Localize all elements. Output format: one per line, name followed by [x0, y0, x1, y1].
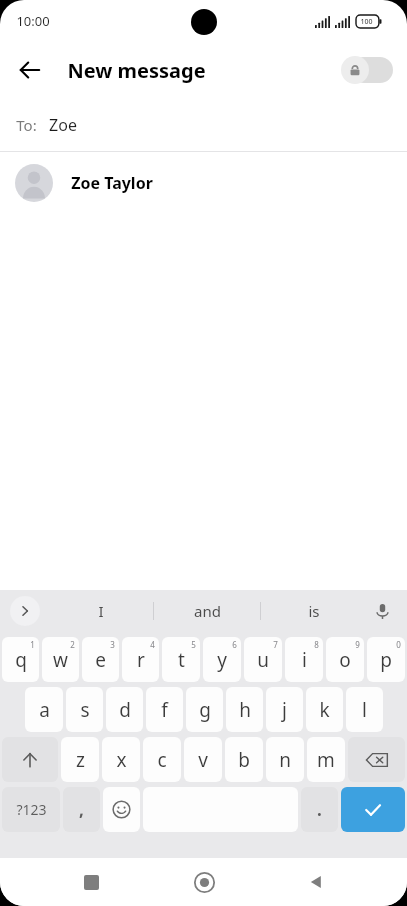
button[interactable]: b: [225, 737, 263, 782]
button[interactable]: Emoji: [103, 787, 140, 832]
staticText: s: [80, 697, 90, 723]
button[interactable]: w: [42, 637, 79, 682]
staticText: e: [95, 647, 106, 673]
staticText: ?123: [16, 800, 47, 819]
staticText: 100: [360, 17, 373, 27]
staticText: is: [308, 601, 320, 621]
staticText: 6: [232, 639, 237, 650]
staticText: c: [157, 747, 167, 773]
button[interactable]: Expand toolbar: [10, 596, 40, 626]
button[interactable]: To:: [0, 98, 407, 151]
button[interactable]: I: [48, 590, 153, 632]
button[interactable]: Recents: [69, 860, 113, 904]
button[interactable]: n: [266, 737, 304, 782]
button[interactable]: e: [82, 637, 119, 682]
staticText: w: [53, 647, 68, 673]
staticText: 8: [314, 639, 319, 650]
button[interactable]: l: [346, 687, 383, 732]
staticText: j: [282, 697, 287, 723]
button[interactable]: m: [307, 737, 345, 782]
button[interactable]: Back: [8, 48, 52, 92]
staticText: 7: [273, 639, 278, 650]
staticText: 2: [70, 639, 75, 650]
button[interactable]: q: [2, 637, 39, 682]
staticText: 4: [150, 639, 155, 650]
button[interactable]: z: [61, 737, 99, 782]
staticText: z: [76, 747, 85, 773]
staticText: n: [279, 747, 291, 773]
staticText: 1: [30, 639, 35, 650]
staticText: b: [238, 747, 250, 773]
button[interactable]: ,: [63, 787, 100, 832]
button[interactable]: Zoe Taylor: [0, 152, 407, 214]
staticText: x: [116, 747, 127, 773]
staticText: u: [257, 647, 269, 673]
button[interactable]: f: [146, 687, 183, 732]
staticText: o: [339, 647, 351, 673]
button[interactable]: v: [184, 737, 222, 782]
button[interactable]: o: [326, 637, 364, 682]
staticText: Zoe: [49, 114, 77, 136]
staticText: h: [239, 697, 251, 723]
staticText: p: [380, 647, 392, 673]
staticText: i: [302, 647, 307, 673]
staticText: New message: [67, 57, 206, 84]
staticText: ,: [79, 798, 84, 821]
staticText: r: [137, 647, 145, 673]
staticText: f: [161, 697, 168, 723]
staticText: a: [39, 697, 50, 723]
button[interactable]: a: [25, 687, 63, 732]
staticText: 3: [110, 639, 115, 650]
button[interactable]: Back: [294, 860, 338, 904]
staticText: y: [217, 647, 227, 673]
button[interactable]: r: [122, 637, 159, 682]
button[interactable]: d: [106, 687, 143, 732]
staticText: 9: [355, 639, 360, 650]
button[interactable]: h: [226, 687, 263, 732]
staticText: v: [198, 747, 208, 773]
button[interactable]: Backspace: [348, 737, 405, 782]
staticText: .: [317, 798, 322, 821]
staticText: I: [98, 601, 104, 621]
button[interactable]: is: [261, 590, 367, 632]
button[interactable]: c: [143, 737, 181, 782]
staticText: q: [15, 647, 27, 673]
button[interactable]: y: [203, 637, 241, 682]
button[interactable]: Shift: [2, 737, 58, 782]
staticText: To:: [16, 115, 37, 135]
button[interactable]: and: [154, 590, 260, 632]
button[interactable]: j: [266, 687, 303, 732]
staticText: 10:00: [16, 12, 50, 30]
staticText: m: [317, 747, 335, 773]
staticText: k: [319, 697, 330, 723]
button[interactable]: Voice input: [365, 594, 399, 628]
button[interactable]: g: [186, 687, 223, 732]
button[interactable]: .: [301, 787, 338, 832]
button[interactable]: k: [306, 687, 343, 732]
staticText: Zoe Taylor: [71, 172, 153, 194]
button[interactable]: p: [367, 637, 405, 682]
staticText: g: [199, 697, 211, 723]
button[interactable]: t: [162, 637, 200, 682]
staticText: 5: [191, 639, 196, 650]
button[interactable]: x: [102, 737, 140, 782]
staticText: 0: [396, 639, 401, 650]
button[interactable]: ?123: [2, 787, 60, 832]
button[interactable]: i: [285, 637, 323, 682]
staticText: d: [119, 697, 131, 723]
button[interactable]: s: [66, 687, 103, 732]
button[interactable]: Send: [341, 787, 405, 832]
staticText: t: [178, 647, 185, 673]
staticText: and: [194, 601, 221, 621]
button[interactable]: Encryption toggle: [341, 54, 393, 86]
button[interactable]: u: [244, 637, 282, 682]
staticText: l: [362, 697, 367, 723]
button[interactable]: Home: [182, 860, 226, 904]
